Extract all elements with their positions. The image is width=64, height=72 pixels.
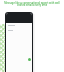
other: Send — [28, 58, 31, 61]
staticText: Message like a conversational expert wit… — [2, 1, 62, 7]
